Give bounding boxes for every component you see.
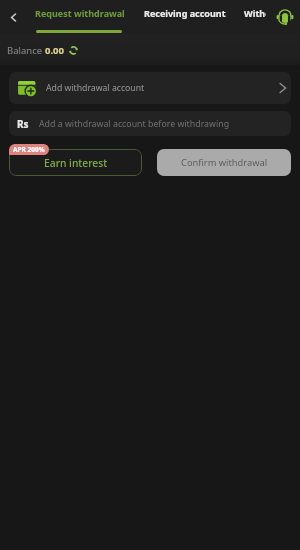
button[interactable]: Receiving account [138,0,232,26]
staticText: APR 200% [13,145,45,154]
button[interactable]: Withdrawal [238,0,272,26]
button[interactable]: Back [1,5,25,29]
button[interactable]: Request withdrawal [29,0,131,26]
staticText: Receiving account [144,7,226,19]
button[interactable]: Add withdrawal account [9,72,291,104]
button[interactable]: Confirm withdrawal [157,149,291,176]
staticText: Confirm withdrawal [181,156,268,169]
button[interactable]: Rs [9,111,291,136]
staticText: Rs [17,117,29,131]
staticText: Add withdrawal account [46,82,145,94]
staticText: Balance [7,44,45,57]
staticText: Earn interest [44,156,108,170]
button[interactable]: Earn interest [9,149,142,176]
button[interactable]: Support [274,6,296,28]
staticText: 0.00 [45,44,64,57]
staticText: Withdrawal [244,7,266,19]
staticText: Request withdrawal [35,7,125,19]
button[interactable]: Refresh [66,43,80,57]
staticText: Add a withdrawal account before withdraw… [39,118,230,130]
